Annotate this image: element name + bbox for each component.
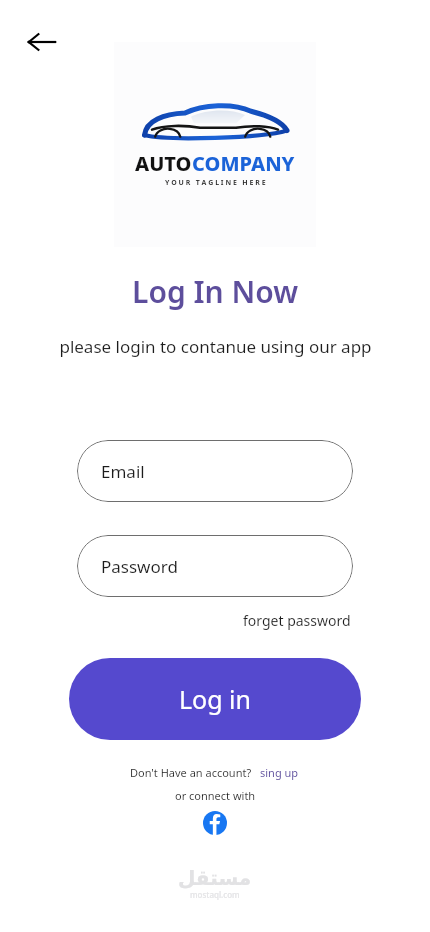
staticText: Don't Have an account?	[130, 765, 252, 780]
staticText: Email	[101, 460, 145, 483]
staticText: Y O U R T A G L I N E H E R E	[165, 178, 266, 188]
staticText: Log In Now	[132, 271, 299, 312]
staticText: Password	[101, 555, 178, 578]
button[interactable]: Password	[77, 535, 353, 597]
staticText: مستقل	[178, 866, 252, 889]
staticText: or connect with	[175, 788, 256, 803]
button[interactable]: Log in	[69, 658, 361, 740]
staticText: COMPANY	[192, 150, 295, 177]
button[interactable]: Back	[18, 18, 66, 66]
button[interactable]: Email	[77, 440, 353, 502]
button[interactable]: sing up	[259, 764, 300, 781]
button[interactable]: Connect with Facebook	[202, 810, 228, 836]
staticText: mostaql.com	[190, 889, 240, 900]
staticText: forget password	[243, 611, 351, 630]
staticText: please login to contanue using our app	[59, 335, 372, 358]
button[interactable]: forget password	[241, 609, 353, 632]
staticText: Log in	[179, 682, 252, 716]
staticText: sing up	[260, 765, 299, 780]
staticText: AUTO	[135, 150, 192, 177]
